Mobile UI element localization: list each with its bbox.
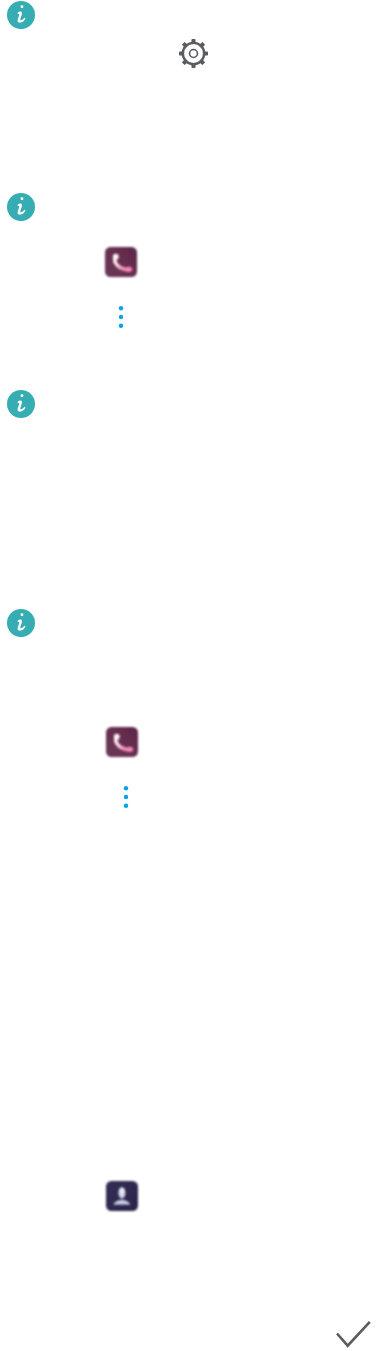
button[interactable]: Information: [7, 1, 35, 29]
button[interactable]: Done: [333, 1316, 373, 1351]
button[interactable]: Settings: [179, 39, 208, 68]
button[interactable]: Information: [7, 390, 35, 418]
button[interactable]: Information: [7, 609, 35, 637]
button[interactable]: Phone: [105, 247, 137, 277]
button[interactable]: More options: [114, 303, 128, 331]
button[interactable]: Phone: [106, 727, 138, 757]
button[interactable]: Contacts: [106, 1181, 138, 1211]
button[interactable]: More options: [119, 783, 133, 811]
button[interactable]: Information: [7, 193, 35, 221]
